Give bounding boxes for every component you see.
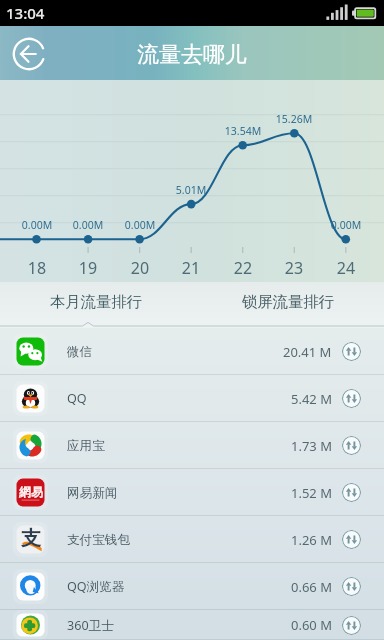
staticText: 20 [120, 257, 160, 279]
button[interactable]: 应用宝 [0, 422, 384, 469]
button[interactable]: Traffic detail [342, 530, 361, 549]
staticText: 0.00M [316, 218, 376, 232]
button[interactable]: QQ [0, 375, 384, 422]
staticText: 網易 [19, 484, 43, 499]
staticText: 13:04 [6, 3, 45, 23]
staticText: 0.00M [7, 218, 67, 232]
button[interactable]: 本月流量排行 [0, 282, 192, 328]
staticText: 360卫士 [67, 617, 114, 634]
staticText: QQ [67, 390, 87, 407]
button[interactable]: 支 [0, 516, 384, 563]
staticText: 支 [21, 526, 41, 551]
button[interactable]: 锁屏流量排行 [192, 282, 384, 328]
staticText: 23 [274, 257, 314, 279]
button[interactable]: Traffic detail [342, 342, 361, 361]
staticText: 19 [68, 257, 108, 279]
button[interactable]: Traffic detail [342, 483, 361, 502]
button[interactable]: Traffic detail [342, 389, 361, 408]
staticText: 5.42 M [291, 390, 332, 408]
button[interactable]: 微信 [0, 328, 384, 375]
button[interactable]: QQ浏览器 [0, 563, 384, 610]
staticText: 流量去哪儿 [137, 41, 247, 69]
staticText: 5.01M [161, 183, 221, 197]
staticText: QQ浏览器 [67, 578, 125, 595]
staticText: 1.52 M [291, 484, 332, 502]
button[interactable]: Traffic detail [342, 577, 361, 596]
button[interactable]: Traffic detail [342, 616, 361, 635]
staticText: 锁屏流量排行 [242, 292, 334, 311]
staticText: 1.26 M [291, 531, 332, 549]
staticText: 网易新闻 [67, 485, 118, 501]
staticText: 15.26M [264, 112, 324, 126]
button[interactable]: 網易 [0, 469, 384, 516]
staticText: 21 [171, 257, 211, 279]
staticText: 应用宝 [67, 438, 105, 454]
button[interactable]: 360卫士 [0, 610, 384, 640]
button[interactable]: Back [11, 36, 47, 72]
button[interactable]: Traffic detail [342, 436, 361, 455]
staticText: 支付宝钱包 [67, 532, 130, 548]
staticText: 0.00M [58, 218, 118, 232]
staticText: 微信 [67, 344, 93, 360]
staticText: 0.66 M [291, 578, 332, 596]
staticText: 13.54M [213, 124, 273, 138]
staticText: 0.00M [110, 218, 170, 232]
staticText: 1.73 M [291, 437, 332, 455]
staticText: 20.41 M [283, 343, 332, 361]
staticText: 本月流量排行 [50, 292, 142, 311]
staticText: 24 [326, 257, 366, 279]
staticText: 22 [223, 257, 263, 279]
staticText: 0.60 M [291, 616, 332, 634]
staticText: 18 [17, 257, 57, 279]
